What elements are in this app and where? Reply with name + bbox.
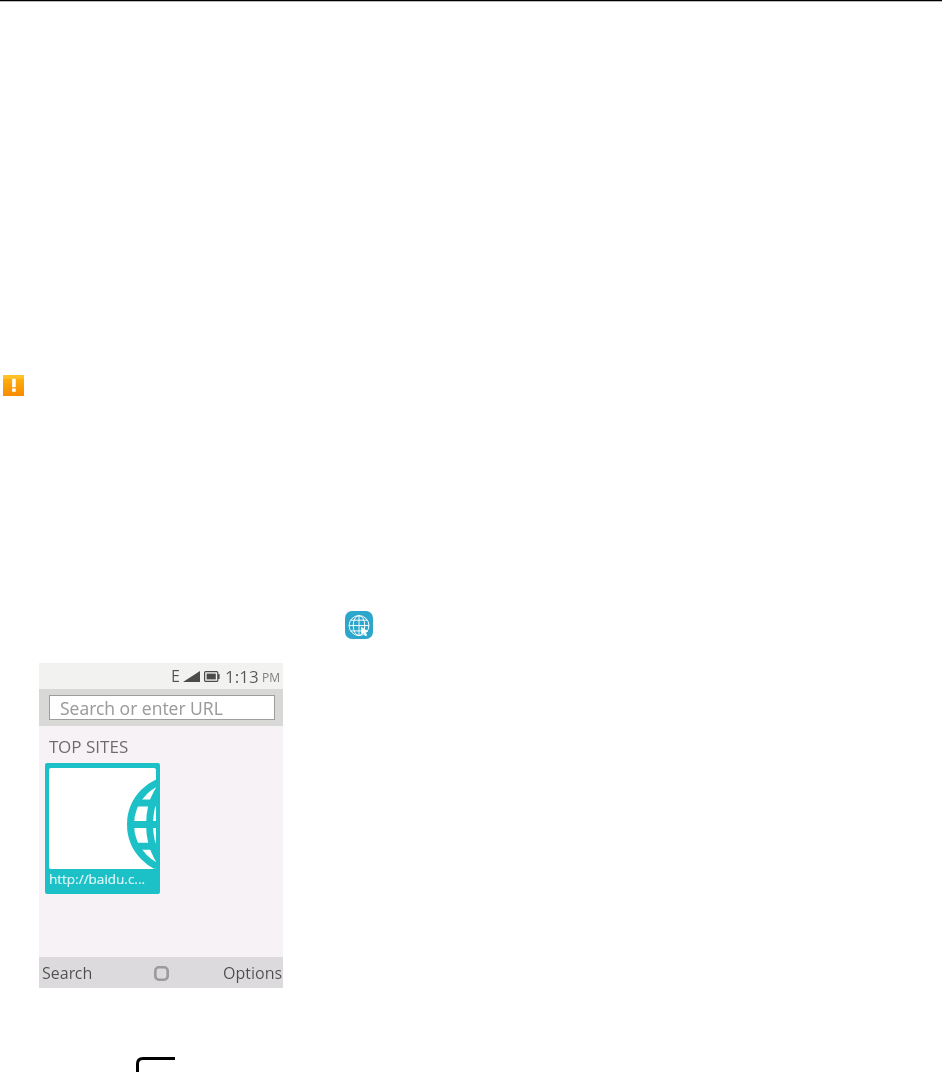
button[interactable]: Search or enter URL: [49, 695, 275, 720]
button[interactable]: Options: [205, 957, 283, 988]
staticText: PM: [262, 669, 281, 685]
button[interactable]: Search: [39, 957, 117, 988]
staticText: http://baidu.c...: [49, 870, 146, 888]
staticText: E: [171, 665, 180, 687]
staticText: Search or enter URL: [60, 696, 223, 720]
staticText: Options: [223, 962, 283, 984]
button[interactable]: Browser: [345, 611, 373, 639]
staticText: 1:13: [225, 665, 259, 688]
staticText: TOP SITES: [49, 735, 129, 758]
staticText: Search: [42, 962, 93, 984]
button[interactable]: Home: [148, 960, 174, 986]
button[interactable]: http://baidu.c...: [45, 763, 160, 894]
